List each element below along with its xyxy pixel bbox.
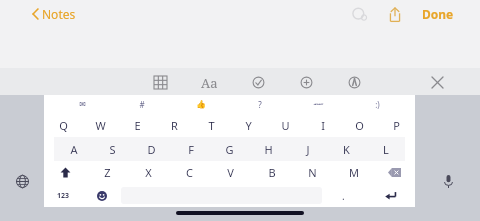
staticText: E [134, 118, 141, 133]
staticText: X [145, 165, 152, 180]
staticText: P [393, 118, 400, 133]
staticText: ? [258, 99, 262, 110]
button[interactable]: V [210, 161, 251, 184]
staticText: Done [422, 6, 454, 22]
staticText: Q [59, 118, 68, 133]
button[interactable]: Table [150, 72, 170, 92]
button[interactable]: ✉ [52, 95, 112, 113]
button[interactable]: K [327, 137, 366, 161]
staticText: F [188, 142, 194, 157]
staticText: H [264, 142, 273, 157]
staticText: Z [104, 165, 111, 180]
staticText: I [321, 118, 325, 133]
button[interactable]: Emoji [82, 184, 121, 207]
button[interactable]: 👍 [171, 95, 230, 113]
button[interactable]: L [366, 137, 405, 161]
staticText: K [343, 142, 350, 157]
button[interactable]: Shift [44, 161, 86, 184]
button[interactable]: Close [428, 73, 446, 91]
button[interactable]: 123 [44, 184, 82, 207]
button[interactable]: O [341, 113, 378, 137]
staticText: G [225, 142, 234, 157]
button[interactable]: Delete [374, 161, 415, 184]
button[interactable]: D [132, 137, 171, 161]
staticText: N [308, 165, 317, 180]
button[interactable]:  [289, 95, 348, 113]
button[interactable]: Checklist [248, 72, 268, 92]
button[interactable]: A [54, 137, 93, 161]
button[interactable]: B [251, 161, 292, 184]
button[interactable]: . [322, 184, 365, 207]
button[interactable]: Add attachment [296, 72, 316, 92]
button[interactable]: R [156, 113, 193, 137]
staticText: S [109, 142, 116, 157]
staticText: V [227, 165, 234, 180]
staticText: J [306, 142, 310, 157]
button[interactable]: Done [420, 3, 456, 25]
button[interactable]: I [304, 113, 341, 137]
button[interactable]: Markup [344, 72, 364, 92]
staticText: . [342, 189, 345, 203]
button[interactable]: H [249, 137, 288, 161]
button[interactable]: M [333, 161, 374, 184]
button[interactable]: N [292, 161, 333, 184]
button[interactable]: E [119, 113, 156, 137]
staticText: D [147, 142, 156, 157]
button[interactable]: F [171, 137, 210, 161]
button[interactable]: U [267, 113, 304, 137]
staticText: W [95, 118, 106, 133]
staticText: M [349, 165, 359, 180]
button[interactable]: Y [230, 113, 267, 137]
button[interactable]: Z [86, 161, 128, 184]
button[interactable]: S [93, 137, 132, 161]
button[interactable]: ? [230, 95, 289, 113]
staticText: L [383, 142, 389, 157]
button[interactable]: Next keyboard [10, 169, 34, 193]
button[interactable]: Return [365, 184, 415, 207]
staticText: :) [375, 99, 380, 110]
button[interactable]: Notes [30, 4, 78, 24]
staticText: C [186, 165, 193, 180]
button[interactable]: Q [44, 113, 82, 137]
button[interactable]: G [210, 137, 249, 161]
button[interactable]: C [169, 161, 210, 184]
button[interactable]: Add People [348, 3, 370, 25]
button[interactable]: Aa [198, 74, 220, 90]
staticText: B [268, 165, 276, 180]
staticText: O [355, 118, 364, 133]
staticText: 123 [57, 191, 70, 201]
staticText:  [313, 99, 324, 109]
button[interactable]: :) [348, 95, 407, 113]
staticText: Aa [201, 74, 218, 90]
button[interactable]: Share [384, 3, 406, 25]
button[interactable]: T [193, 113, 230, 137]
staticText: Notes [42, 6, 76, 22]
staticText: R [171, 118, 178, 133]
staticText: # [139, 99, 145, 110]
button[interactable]: J [288, 137, 327, 161]
staticText: A [70, 142, 78, 157]
staticText: Y [245, 118, 252, 133]
staticText: 👍 [196, 100, 206, 109]
button[interactable]: X [128, 161, 169, 184]
button[interactable]: Dictate [436, 169, 460, 193]
staticText: ✉ [79, 100, 86, 109]
staticText: T [208, 118, 215, 133]
button[interactable]: W [82, 113, 119, 137]
staticText: U [281, 118, 290, 133]
button[interactable]: P [378, 113, 415, 137]
button[interactable]: # [112, 95, 171, 113]
